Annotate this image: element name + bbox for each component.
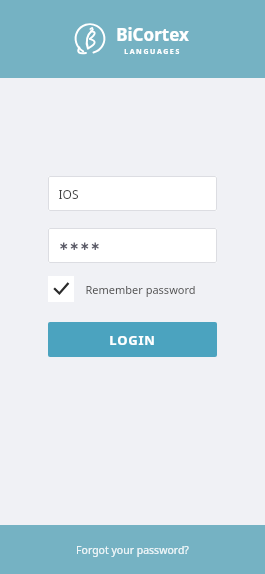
button[interactable]: LOGIN: [48, 322, 217, 357]
button[interactable]: IOS: [48, 176, 217, 211]
button[interactable]: Remember password: [48, 275, 196, 303]
staticText: ∗∗∗∗: [58, 239, 101, 253]
other: BiCortex logo: [72, 22, 108, 58]
button[interactable]: ∗∗∗∗: [48, 228, 217, 263]
staticText: Forgot your password?: [76, 543, 189, 557]
button[interactable]: Forgot your password?: [0, 525, 265, 574]
staticText: BiCortex: [116, 23, 189, 46]
staticText: LANGUAGES: [124, 47, 181, 57]
staticText: IOS: [58, 186, 79, 202]
staticText: Remember password: [85, 282, 196, 297]
staticText: LOGIN: [109, 331, 156, 349]
